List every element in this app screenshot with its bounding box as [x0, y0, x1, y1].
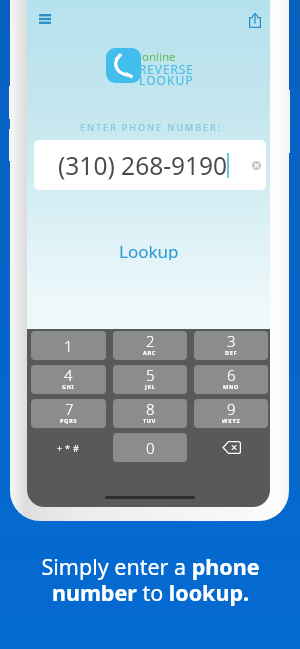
staticText: REVERSE [139, 61, 194, 77]
staticText: Simply enter a phone number to lookup. [41, 552, 260, 608]
button[interactable]: Lookup [109, 237, 189, 263]
staticText: 9 [227, 399, 236, 419]
button[interactable]: 2 [113, 331, 187, 360]
staticText: Lookup [119, 240, 179, 260]
staticText: 8 [146, 399, 155, 419]
button[interactable]: Backspace [194, 433, 268, 462]
button[interactable]: 6 [194, 365, 268, 394]
button[interactable]: 0 [113, 433, 187, 462]
button[interactable]: 1 [31, 331, 106, 360]
button[interactable]: + * # [31, 433, 106, 462]
staticText: 6 [227, 365, 236, 385]
staticText: ENTER PHONE NUMBER: [80, 121, 222, 134]
button[interactable]: Clear [248, 157, 264, 173]
staticText: 5 [146, 365, 155, 385]
staticText: LOOKUP [139, 72, 194, 88]
button[interactable]: 4 [31, 365, 106, 394]
button[interactable]: Share [244, 8, 265, 32]
staticText: 2 [146, 331, 155, 351]
staticText: GHI [62, 383, 75, 390]
staticText: DEF [225, 349, 238, 356]
staticText: online [142, 49, 176, 65]
staticText: 0 [146, 438, 155, 458]
button[interactable]: 3 [194, 331, 268, 360]
staticText: 7 [65, 399, 74, 419]
staticText: 1 [64, 336, 73, 356]
button[interactable]: 5 [113, 365, 187, 394]
staticText: TUV [143, 417, 157, 424]
staticText: 3 [227, 331, 236, 351]
staticText: PQRS [60, 417, 78, 424]
staticText: JKL [145, 383, 156, 390]
button[interactable]: 8 [113, 399, 187, 428]
staticText: ABC [143, 349, 157, 356]
staticText: MNO [223, 383, 240, 390]
staticText: 4 [64, 365, 73, 385]
button[interactable]: 9 [194, 399, 268, 428]
button[interactable]: (310) 268-9190 [34, 140, 266, 190]
button[interactable]: Menu [35, 7, 54, 30]
staticText: + * # [57, 442, 80, 454]
staticText: WXYZ [222, 417, 241, 424]
staticText: (310) 268-9190 [58, 149, 228, 182]
button[interactable]: 7 [31, 399, 106, 428]
